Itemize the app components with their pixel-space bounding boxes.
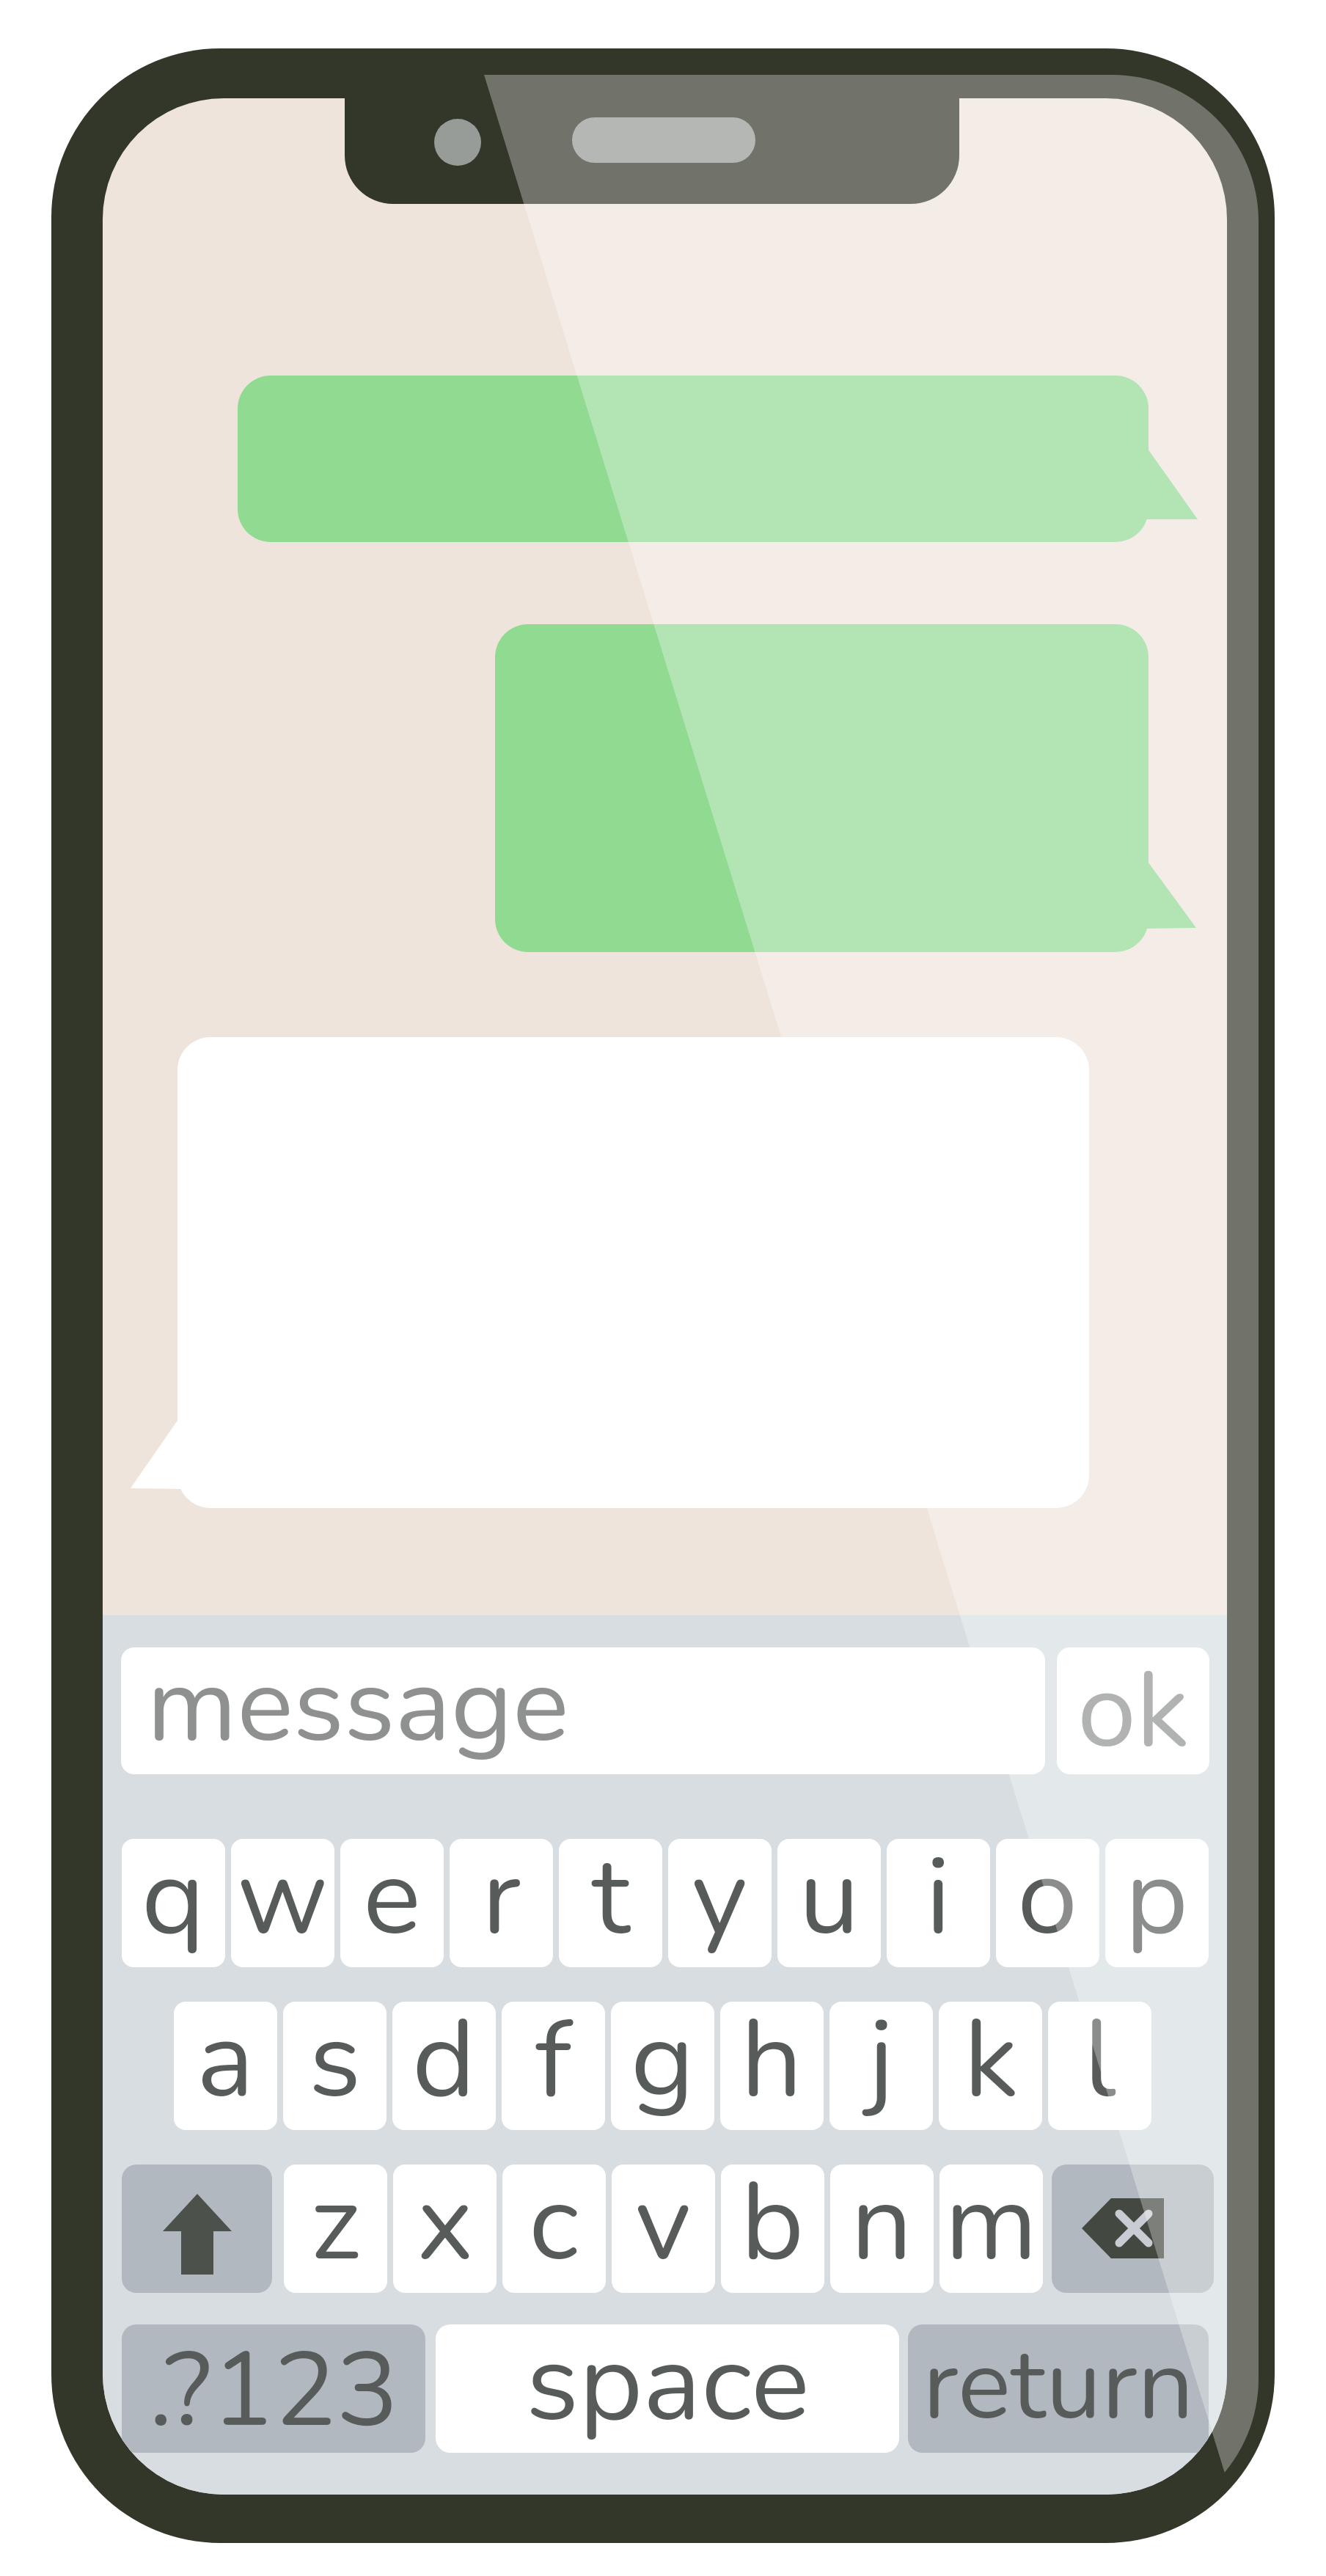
button[interactable] [122,2165,272,2293]
button[interactable]: t [559,1839,662,1967]
staticText: return [923,2317,1194,2454]
staticText: b [741,2148,805,2297]
button[interactable]: q [122,1839,225,1967]
staticText: y [692,1823,748,1971]
staticText: n [851,2148,913,2297]
staticText: t [592,1823,630,1971]
button[interactable]: j [829,2002,933,2130]
staticText: ok [1077,1639,1190,1782]
staticText: o [1017,1823,1078,1971]
button[interactable]: return [908,2324,1209,2453]
button[interactable]: v [612,2165,715,2293]
button[interactable]: g [611,2002,714,2130]
staticText: m [945,2148,1038,2297]
button[interactable]: a [174,2002,277,2130]
staticText: l [1084,1986,1116,2134]
button[interactable]: r [450,1839,553,1967]
button[interactable]: d [392,2002,496,2130]
button[interactable]: y [668,1839,772,1967]
staticText: z [310,2148,361,2297]
button[interactable]: k [939,2002,1042,2130]
staticText: r [482,1823,521,1971]
button[interactable]: s [283,2002,387,2130]
staticText: p [1125,1823,1189,1971]
staticText: u [799,1823,860,1971]
button[interactable]: w [231,1839,334,1967]
button[interactable]: u [777,1839,881,1967]
button[interactable]: c [502,2165,606,2293]
button[interactable]: ok [1057,1647,1209,1774]
button[interactable]: l [1048,2002,1151,2130]
staticText: h [741,1986,803,2134]
staticText: i [926,1823,951,1971]
staticText: space [526,2308,810,2458]
button[interactable]: p [1105,1839,1209,1967]
staticText: j [868,1986,894,2134]
staticText: a [197,1986,254,2134]
staticText: q [142,1823,205,1971]
button[interactable]: b [721,2165,824,2293]
button[interactable]: .?123 [122,2324,425,2453]
button[interactable]: o [996,1839,1099,1967]
staticText: s [309,1986,362,2134]
button[interactable]: x [393,2165,497,2293]
staticText: c [529,2148,579,2297]
button[interactable]: h [720,2002,824,2130]
staticText: f [535,1986,572,2134]
staticText: k [964,1986,1018,2134]
button[interactable]: space [436,2324,899,2453]
button[interactable] [1052,2165,1214,2293]
staticText: d [412,1986,476,2134]
staticText: message [147,1647,569,1774]
staticText: x [417,2148,474,2297]
staticText: .?123 [149,2319,399,2462]
button[interactable]: m [939,2165,1043,2293]
button[interactable]: e [340,1839,444,1967]
button[interactable]: message [121,1647,1045,1774]
button[interactable]: i [887,1839,990,1967]
button[interactable]: f [502,2002,605,2130]
staticText: v [635,2148,692,2297]
button[interactable]: n [830,2165,934,2293]
staticText: e [363,1823,421,1971]
button[interactable]: z [284,2165,387,2293]
staticText: w [237,1823,329,1971]
staticText: g [631,1986,695,2134]
